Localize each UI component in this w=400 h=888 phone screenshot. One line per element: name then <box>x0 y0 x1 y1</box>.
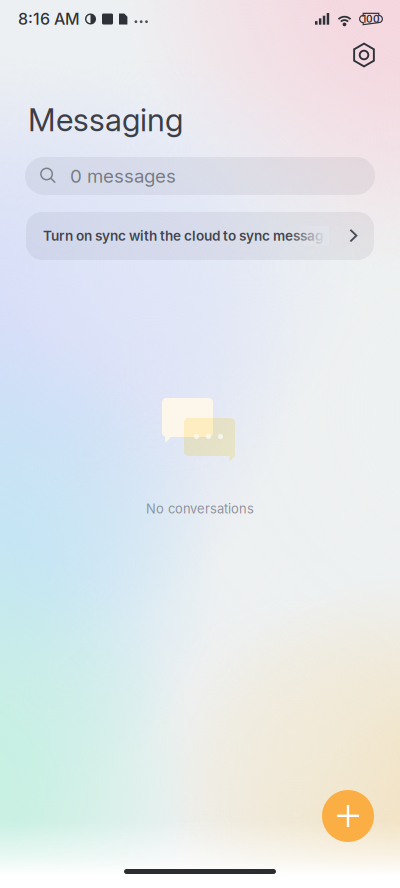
button[interactable]: Settings <box>344 38 384 72</box>
staticText: No conversations <box>146 501 254 517</box>
staticText: 100 <box>362 13 380 25</box>
button[interactable]: Turn on sync with the cloud to sync mess… <box>26 212 374 260</box>
button[interactable]: New message <box>322 790 374 842</box>
staticText: Messaging <box>28 101 183 139</box>
staticText: 0 messages <box>70 165 176 187</box>
staticText: 8:16 AM <box>18 9 80 29</box>
staticText: Turn on sync with the cloud to sync mess… <box>43 228 339 244</box>
button[interactable]: 0 messages <box>25 157 375 195</box>
